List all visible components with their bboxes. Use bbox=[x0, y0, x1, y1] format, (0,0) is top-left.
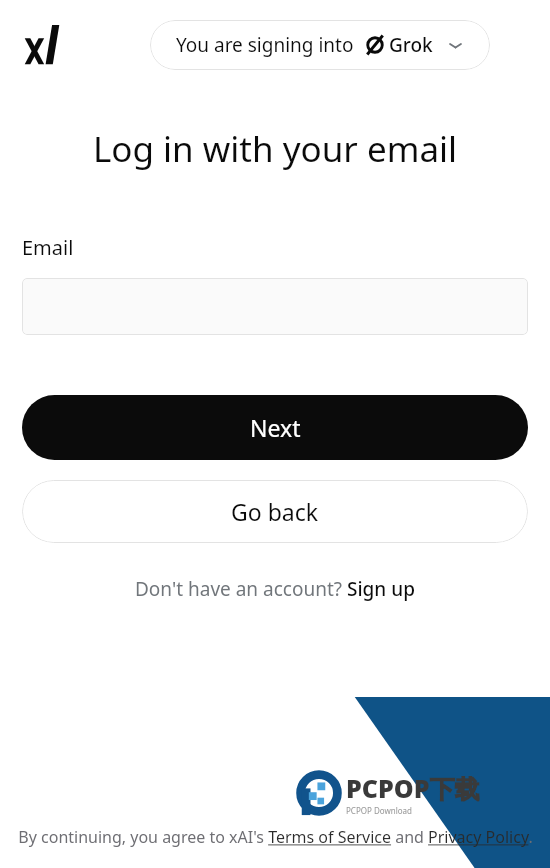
staticText: Next bbox=[250, 412, 301, 443]
button[interactable]: xAI home bbox=[24, 25, 60, 65]
staticText: Don't have an account? bbox=[135, 576, 347, 602]
button[interactable] bbox=[22, 278, 528, 335]
staticText: By continuing, you agree to xAI's Terms … bbox=[18, 826, 533, 848]
button[interactable]: You are signing into bbox=[150, 20, 490, 70]
staticText: Log in with your email bbox=[0, 125, 550, 173]
staticText: Email bbox=[22, 234, 74, 261]
button[interactable]: By continuing, you agree to xAI's Terms … bbox=[18, 826, 533, 848]
staticText: Grok bbox=[389, 32, 433, 58]
button[interactable]: Go back bbox=[22, 480, 528, 543]
staticText: PCPOP下载 bbox=[346, 771, 480, 805]
staticText: Go back bbox=[231, 496, 319, 527]
staticText: You are signing into bbox=[176, 32, 354, 58]
button[interactable]: Sign up bbox=[347, 576, 415, 602]
staticText: Sign up bbox=[347, 576, 415, 602]
staticText: PCPOP Download bbox=[346, 805, 412, 816]
button[interactable]: Next bbox=[22, 395, 528, 460]
